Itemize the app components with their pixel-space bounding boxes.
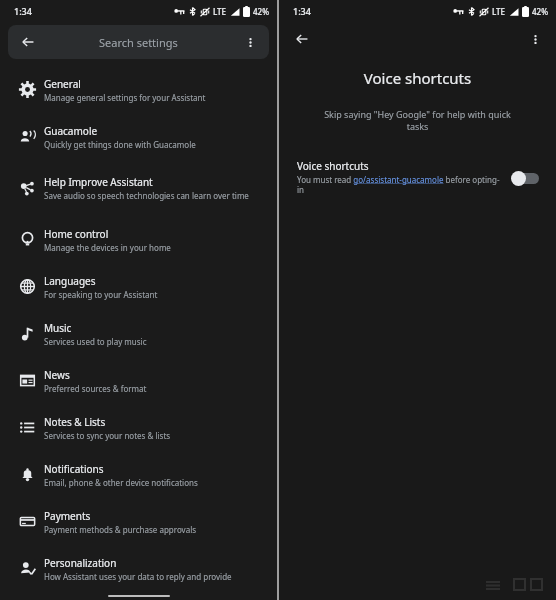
staticText: News	[44, 368, 70, 382]
staticText: 42%	[253, 6, 269, 17]
staticText: Guacamole	[44, 124, 98, 138]
staticText: Payments	[44, 509, 91, 523]
staticText: Preferred sources & format	[44, 383, 147, 394]
staticText: General	[44, 77, 81, 91]
staticText: 1:34	[293, 5, 311, 17]
staticText: Notifications	[44, 462, 104, 476]
button[interactable]: Guacamole	[0, 113, 277, 160]
staticText: 1:34	[14, 5, 32, 17]
staticText: Personalization	[44, 556, 117, 570]
staticText: Payment methods & purchase approvals	[44, 524, 197, 535]
button[interactable]: Languages	[0, 263, 277, 310]
staticText: For speaking to your Assistant	[44, 289, 158, 300]
button[interactable]: Payments	[0, 498, 277, 545]
button[interactable]: General	[0, 66, 277, 113]
button[interactable]: News	[0, 357, 277, 404]
staticText: Search settings	[99, 35, 178, 50]
staticText: Save audio so speech technologies can le…	[44, 190, 249, 201]
button[interactable]: More options	[239, 31, 261, 53]
button[interactable]: More options	[524, 28, 546, 50]
staticText: Skip saying "Hey Google" for help with q…	[317, 108, 518, 133]
staticText: Help Improve Assistant	[44, 175, 153, 189]
staticText: Home control	[44, 227, 109, 241]
button[interactable]: Notifications	[0, 451, 277, 498]
staticText: Notes & Lists	[44, 415, 106, 429]
button[interactable]: Home control	[0, 216, 277, 263]
staticText: Email, phone & other device notification…	[44, 477, 198, 488]
staticText: Manage the devices in your home	[44, 242, 171, 253]
staticText: Voice shortcuts	[279, 68, 556, 88]
staticText: LTE	[213, 6, 227, 17]
button[interactable]: Voice shortcuts	[279, 159, 556, 196]
staticText: 42%	[532, 6, 548, 17]
button[interactable]: Voice shortcuts toggle	[510, 169, 542, 187]
staticText: How Assistant uses your data to reply an…	[44, 571, 232, 582]
staticText: Quickly get things done with Guacamole	[44, 139, 196, 150]
staticText: You must read go/assistant-guacamole bef…	[297, 174, 502, 196]
button[interactable]: Back	[16, 30, 40, 54]
staticText: Music	[44, 321, 72, 335]
button[interactable]: Music	[0, 310, 277, 357]
staticText: LTE	[492, 6, 506, 17]
staticText: Voice shortcuts	[297, 159, 369, 173]
button[interactable]: Help Improve Assistant	[0, 160, 277, 216]
staticText: Services used to play music	[44, 336, 147, 347]
staticText: Languages	[44, 274, 96, 288]
button[interactable]: Back	[289, 26, 315, 52]
button[interactable]: Personalization	[0, 545, 277, 592]
button[interactable]: Back	[8, 25, 269, 59]
button[interactable]: Notes & Lists	[0, 404, 277, 451]
staticText: Manage general settings for your Assista…	[44, 92, 206, 103]
staticText: Services to sync your notes & lists	[44, 430, 171, 441]
